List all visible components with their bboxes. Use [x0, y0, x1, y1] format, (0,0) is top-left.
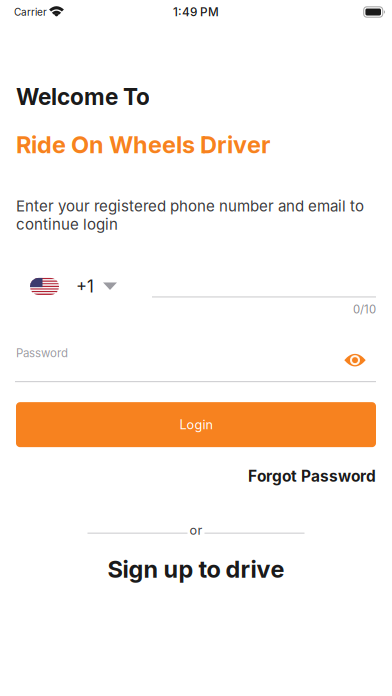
staticText: Carrier: [14, 6, 47, 18]
staticText: Ride On Wheels Driver: [16, 130, 270, 159]
staticText: 1:49 PM: [173, 5, 219, 19]
staticText: Welcome To: [16, 83, 150, 110]
staticText: Enter your registered phone number and e…: [16, 197, 364, 233]
staticText: or: [189, 522, 202, 538]
button[interactable]: Select country calling code: [30, 271, 152, 301]
button[interactable]: Show password: [354, 345, 376, 361]
staticText: Sign up to drive: [107, 555, 284, 583]
staticText: Login: [179, 417, 212, 432]
button[interactable]: Forgot Password: [16, 461, 376, 491]
button[interactable]: Login: [16, 402, 376, 447]
button[interactable]: Sign up to drive: [0, 555, 392, 583]
staticText: 0/10: [353, 302, 376, 316]
staticText: Forgot Password: [248, 467, 376, 485]
staticText: +1: [76, 276, 94, 297]
staticText: Password: [16, 346, 68, 360]
